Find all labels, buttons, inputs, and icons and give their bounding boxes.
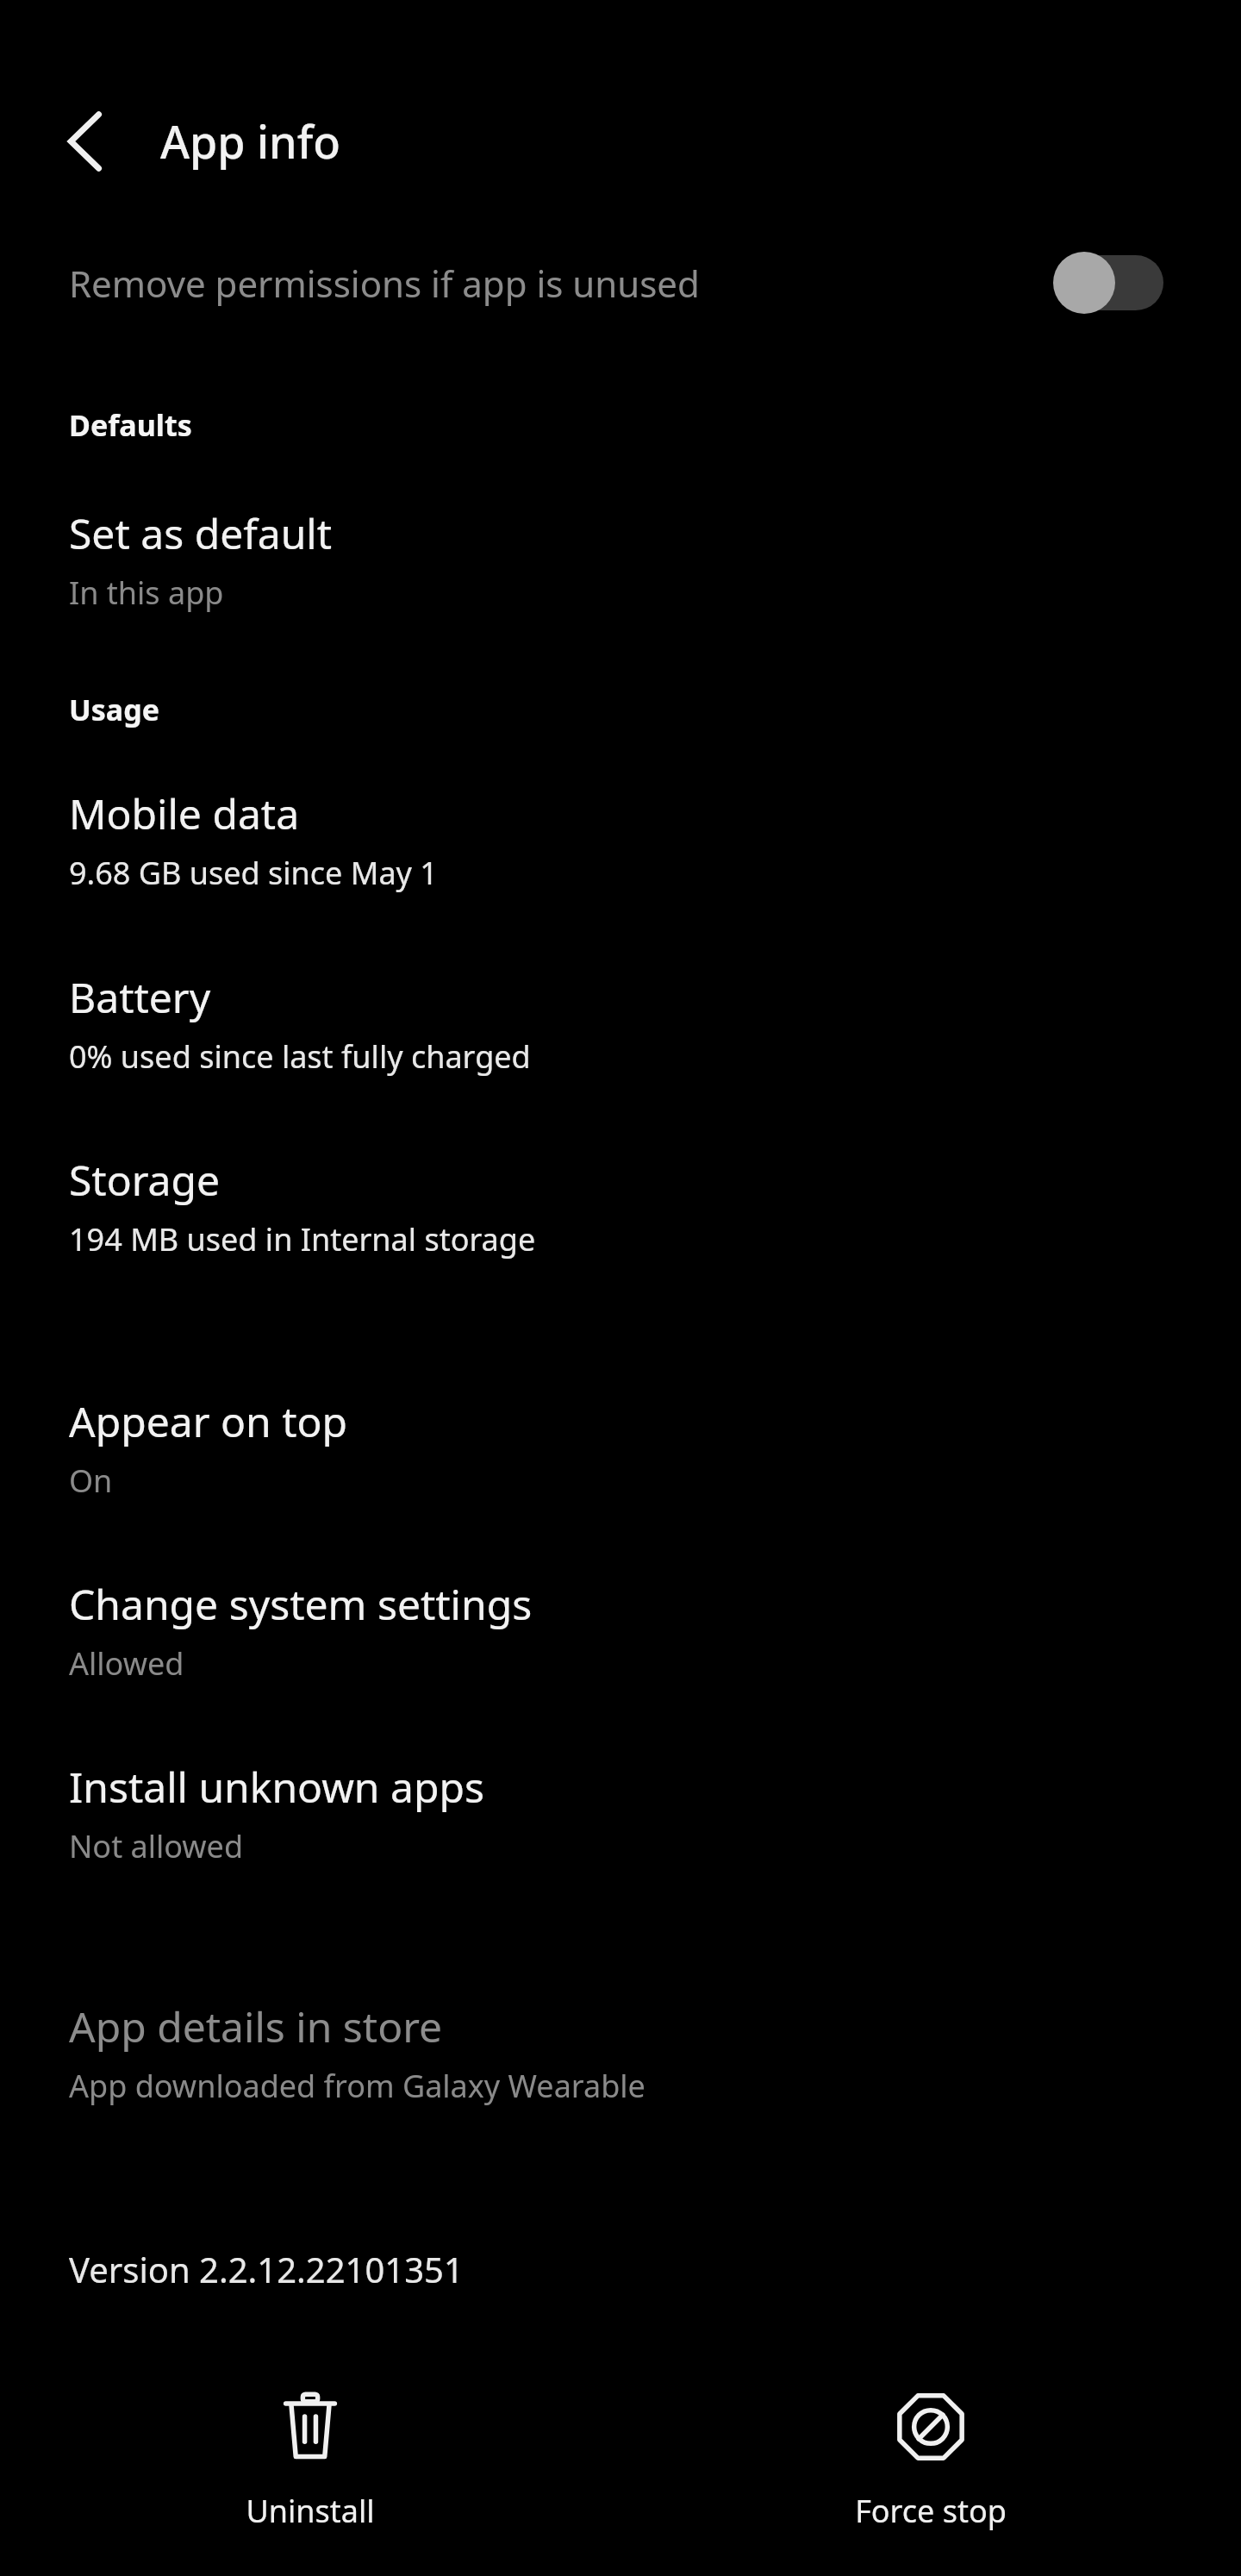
- button[interactable]: Mobile data: [0, 780, 1241, 910]
- staticText: Change system settings: [69, 1576, 533, 1632]
- staticText: Install unknown apps: [69, 1759, 484, 1815]
- staticText: Storage: [69, 1152, 221, 1208]
- staticText: App details in store: [69, 1998, 443, 2054]
- button[interactable]: Set as default: [0, 500, 1241, 629]
- staticText: On: [69, 1460, 113, 1502]
- staticText: Remove permissions if app is unused: [69, 259, 700, 308]
- staticText: Force stop: [855, 2490, 1007, 2532]
- staticText: Appear on top: [69, 1393, 348, 1449]
- button[interactable]: Back: [41, 97, 131, 186]
- staticText: In this app: [69, 572, 224, 614]
- staticText: Defaults: [69, 405, 192, 445]
- button[interactable]: Remove permissions if app is unused: [0, 231, 1241, 335]
- button[interactable]: Install unknown apps: [0, 1754, 1241, 1883]
- staticText: 0% used since last fully charged: [69, 1035, 531, 1078]
- staticText: Version 2.2.12.22101351: [69, 2246, 464, 2292]
- other: Uninstall: [273, 2390, 347, 2464]
- button[interactable]: Force stop: [620, 2373, 1241, 2549]
- staticText: Set as default: [69, 505, 333, 561]
- button[interactable]: Storage: [0, 1147, 1241, 1276]
- staticText: 194 MB used in Internal storage: [69, 1218, 536, 1260]
- staticText: Mobile data: [69, 785, 300, 841]
- staticText: Not allowed: [69, 1825, 244, 1867]
- button[interactable]: App details in store: [0, 1993, 1241, 2123]
- button[interactable]: Appear on top: [0, 1388, 1241, 1517]
- button[interactable]: Change system settings: [0, 1571, 1241, 1700]
- staticText: Usage: [69, 690, 159, 729]
- other: Force stop: [894, 2390, 968, 2464]
- button[interactable]: Battery: [0, 964, 1241, 1093]
- staticText: 9.68 GB used since May 1: [69, 852, 438, 894]
- staticText: Uninstall: [246, 2490, 375, 2532]
- staticText: App info: [160, 110, 341, 172]
- button[interactable]: Remove permissions toggle: [1053, 252, 1170, 314]
- staticText: App downloaded from Galaxy Wearable: [69, 2065, 645, 2107]
- staticText: Battery: [69, 969, 211, 1025]
- staticText: Allowed: [69, 1642, 184, 1685]
- button[interactable]: Uninstall: [0, 2373, 620, 2549]
